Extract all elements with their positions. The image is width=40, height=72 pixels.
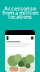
staticText: from a million	[2, 9, 38, 16]
staticText: Accessorise	[4, 5, 36, 12]
staticText: locations	[8, 13, 32, 20]
